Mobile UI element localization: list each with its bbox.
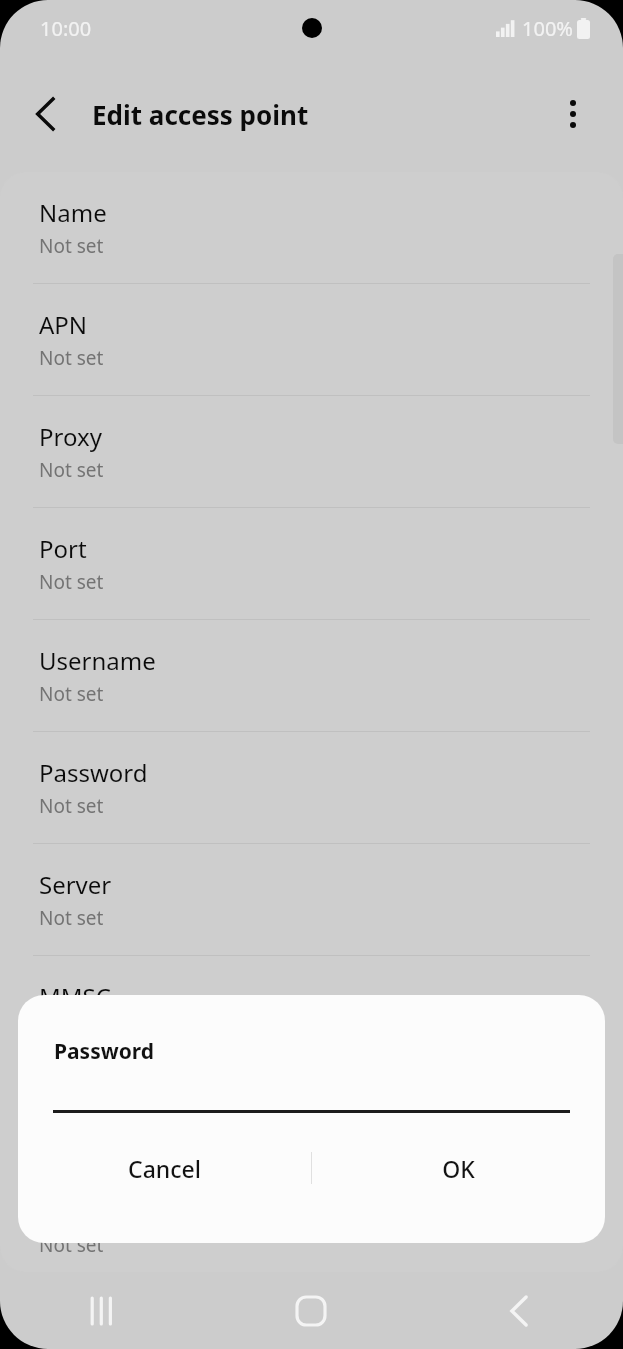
staticText: Not set (39, 1232, 104, 1258)
button[interactable]: Name (0, 172, 623, 283)
staticText: Not set (39, 681, 104, 707)
button[interactable]: Back (415, 1272, 623, 1349)
staticText: MMSC (39, 980, 111, 1013)
staticText: OK (442, 1153, 475, 1184)
button[interactable]: Proxy (0, 396, 623, 507)
staticText: Edit access point (92, 97, 309, 132)
staticText: Password (54, 1037, 155, 1066)
staticText: Username (39, 644, 156, 677)
staticText: 100% (522, 15, 573, 42)
button[interactable]: More options (550, 91, 596, 137)
button[interactable]: Cancel (18, 1137, 311, 1199)
staticText: Cancel (128, 1153, 201, 1184)
staticText: Not set (39, 793, 104, 819)
button[interactable]: Back (22, 90, 70, 138)
staticText: Password (39, 756, 148, 789)
staticText: Not set (39, 569, 104, 595)
button[interactable]: Recents (0, 1272, 207, 1349)
staticText: Name (39, 196, 107, 229)
staticText: Not set (39, 457, 104, 483)
button[interactable]: MMSC (0, 956, 623, 1067)
button[interactable]: OK (312, 1137, 605, 1199)
staticText: Port (39, 532, 87, 565)
button[interactable]: MMS port (0, 1180, 623, 1272)
staticText: MMS proxy (39, 1092, 166, 1125)
staticText: APN (39, 308, 88, 341)
staticText: Server (39, 868, 112, 901)
button[interactable]: MMS proxy (0, 1068, 623, 1179)
button[interactable]: APN (0, 284, 623, 395)
staticText: Not set (39, 233, 104, 259)
button[interactable]: Server (0, 844, 623, 955)
button[interactable]: Home (207, 1272, 415, 1349)
button[interactable]: Port (0, 508, 623, 619)
staticText: Not set (39, 905, 104, 931)
staticText: Not set (39, 345, 104, 371)
button[interactable]: Username (0, 620, 623, 731)
button[interactable]: Password (0, 732, 623, 843)
staticText: 10:00 (40, 15, 92, 42)
staticText: Proxy (39, 420, 102, 453)
